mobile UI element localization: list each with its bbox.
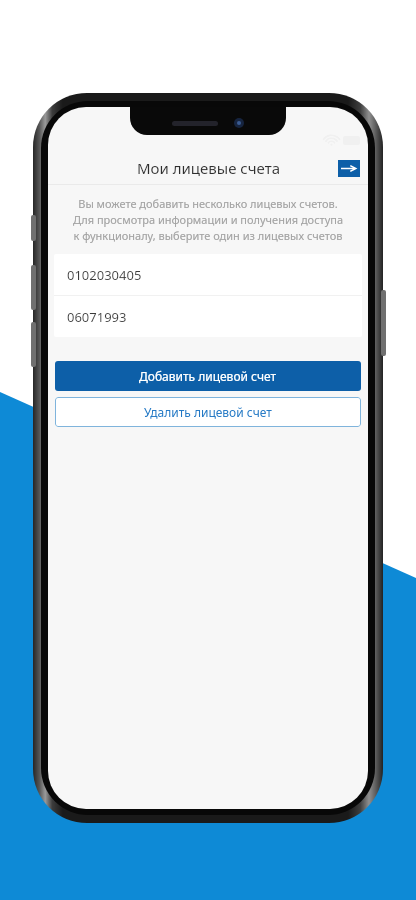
- staticText: 0102030405: [67, 266, 142, 284]
- staticText: Вы можете добавить несколько лицевых сче…: [54, 196, 362, 243]
- button[interactable]: Удалить лицевой счет: [55, 397, 361, 427]
- button[interactable]: Добавить лицевой счет: [55, 361, 361, 391]
- staticText: Удалить лицевой счет: [144, 404, 272, 420]
- staticText: Добавить лицевой счет: [139, 368, 277, 384]
- button[interactable]: 06071993: [54, 296, 362, 337]
- staticText: Мои лицевые счета: [137, 158, 280, 178]
- button[interactable]: 0102030405: [54, 254, 362, 295]
- staticText: 06071993: [67, 308, 127, 326]
- button[interactable]: Выход: [338, 160, 360, 177]
